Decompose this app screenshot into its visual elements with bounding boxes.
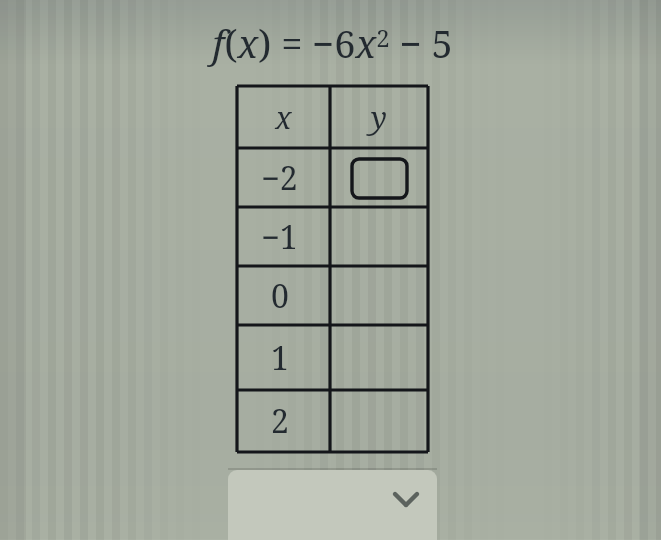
staticText: 2 bbox=[271, 399, 289, 443]
button[interactable]: Expand answer choices bbox=[228, 470, 437, 540]
staticText: f(x) = −6x2 − 5 bbox=[150, 17, 515, 69]
staticText: 0 bbox=[271, 274, 289, 318]
staticText: −2 bbox=[261, 156, 298, 200]
staticText: x bbox=[275, 97, 292, 138]
staticText: y bbox=[371, 97, 387, 138]
staticText: 1 bbox=[271, 336, 289, 380]
staticText: −1 bbox=[261, 215, 298, 259]
